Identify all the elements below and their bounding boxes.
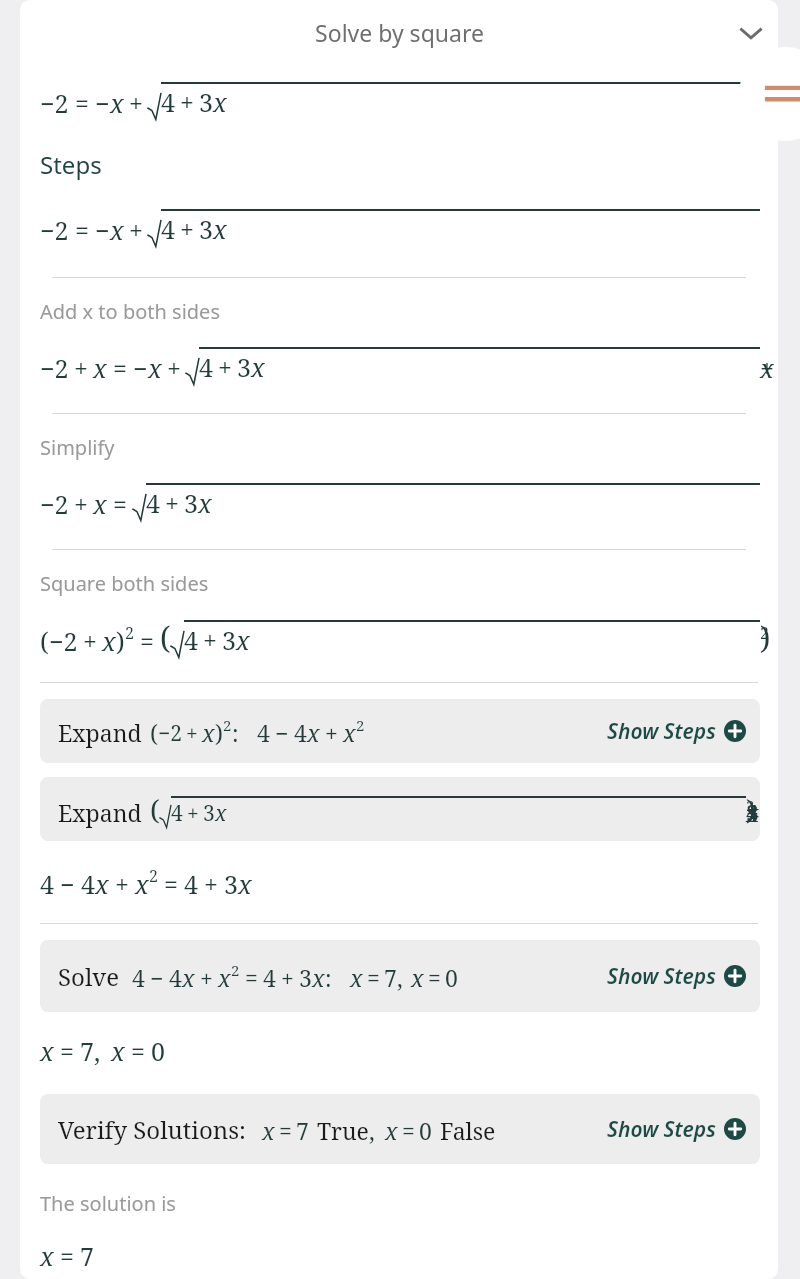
other: Show steps <box>724 965 746 987</box>
staticText: + <box>165 486 179 520</box>
staticText: = <box>140 624 154 658</box>
staticText: x <box>40 1239 54 1273</box>
staticText: Simplify <box>40 434 115 461</box>
staticText: 2 <box>223 715 232 735</box>
staticText: Expand <box>58 717 142 748</box>
staticText: + <box>129 86 143 120</box>
staticText: 2 <box>356 715 365 735</box>
staticText: x <box>198 486 212 520</box>
staticText: x <box>385 1115 398 1146</box>
staticText: = <box>367 962 380 993</box>
staticText: ) <box>116 624 125 658</box>
staticText: x <box>40 1034 54 1068</box>
staticText: + <box>200 962 213 993</box>
staticText: 4 <box>161 212 175 246</box>
staticText: 2 <box>231 960 240 980</box>
staticText: : <box>232 717 239 748</box>
staticText: − <box>275 717 289 748</box>
staticText: x <box>312 962 325 993</box>
staticText: = <box>245 962 258 993</box>
staticText: + <box>187 799 199 828</box>
staticText: 4 <box>257 717 270 748</box>
staticText: x <box>111 1034 125 1068</box>
staticText: 4 <box>40 867 54 901</box>
staticText: 3 <box>199 85 213 119</box>
staticText: = <box>164 867 178 901</box>
staticText: = <box>113 351 127 385</box>
staticText: 3 <box>184 486 198 520</box>
staticText: x <box>135 867 149 901</box>
staticText: x <box>215 799 227 828</box>
staticText: 4 <box>161 85 175 119</box>
staticText: = <box>60 1034 74 1068</box>
other: Show steps <box>724 720 746 742</box>
staticText: x <box>251 350 265 384</box>
staticText: Verify Solutions: <box>58 1113 246 1146</box>
staticText: 3 <box>299 962 312 993</box>
staticText: = <box>60 1239 74 1273</box>
button[interactable]: Expand <box>40 699 760 763</box>
staticText: + <box>74 487 88 521</box>
staticText: x <box>110 213 124 247</box>
staticText: + <box>186 719 198 748</box>
staticText: Solve <box>58 960 120 993</box>
staticText: = <box>75 213 89 247</box>
staticText: ) <box>215 717 223 748</box>
staticText: 3 <box>237 350 251 384</box>
staticText: ( <box>40 624 49 658</box>
staticText: x <box>213 212 227 246</box>
staticText: x <box>148 351 162 385</box>
staticText: = <box>113 487 127 521</box>
staticText: True <box>317 1115 369 1146</box>
staticText: x <box>350 962 363 993</box>
staticText: 7 <box>384 962 397 993</box>
staticText: 2 <box>149 865 158 887</box>
staticText: 2 <box>125 622 134 644</box>
staticText: + <box>83 624 97 658</box>
staticText: 4 <box>81 867 95 901</box>
staticText: + <box>325 717 338 748</box>
staticText: −2 <box>40 86 69 120</box>
staticText: Steps <box>40 148 102 181</box>
staticText: 0 <box>151 1034 165 1068</box>
button[interactable]: Equals <box>739 47 800 141</box>
staticText: 4 <box>146 486 160 520</box>
staticText: − <box>95 213 110 247</box>
staticText: 4 <box>263 962 276 993</box>
staticText: x <box>93 351 107 385</box>
staticText: x <box>218 962 231 993</box>
staticText: , <box>397 962 403 993</box>
staticText: ( <box>160 617 171 658</box>
staticText: x <box>93 487 107 521</box>
button[interactable]: Solve <box>40 940 760 1012</box>
staticText: + <box>203 623 217 657</box>
staticText: + <box>180 85 194 119</box>
staticText: x <box>182 962 195 993</box>
staticText: : <box>325 962 332 993</box>
staticText: − <box>150 962 164 993</box>
button[interactable]: Expand <box>40 777 760 841</box>
staticText: Square both sides <box>40 570 209 597</box>
button[interactable]: Verify Solutions: <box>40 1094 760 1164</box>
staticText: − <box>133 351 148 385</box>
staticText: x <box>110 86 124 120</box>
staticText: 4 <box>294 717 307 748</box>
staticText: −2 <box>49 624 78 658</box>
staticText: x <box>202 717 215 748</box>
staticText: + <box>204 867 218 901</box>
button[interactable]: Collapse <box>734 16 768 50</box>
staticText: 7 <box>80 1034 94 1068</box>
staticText: x <box>307 717 320 748</box>
staticText: Solve by square <box>315 17 484 48</box>
staticText: = <box>402 1115 415 1146</box>
staticText: + <box>115 867 129 901</box>
staticText: x <box>213 85 227 119</box>
staticText: 4 <box>171 799 183 828</box>
staticText: + <box>74 351 88 385</box>
staticText: 0 <box>445 962 458 993</box>
staticText: ( <box>150 790 160 828</box>
staticText: 4 <box>199 350 213 384</box>
staticText: 4 <box>169 962 182 993</box>
staticText: −2 <box>40 213 69 247</box>
staticText: −2 <box>40 351 69 385</box>
